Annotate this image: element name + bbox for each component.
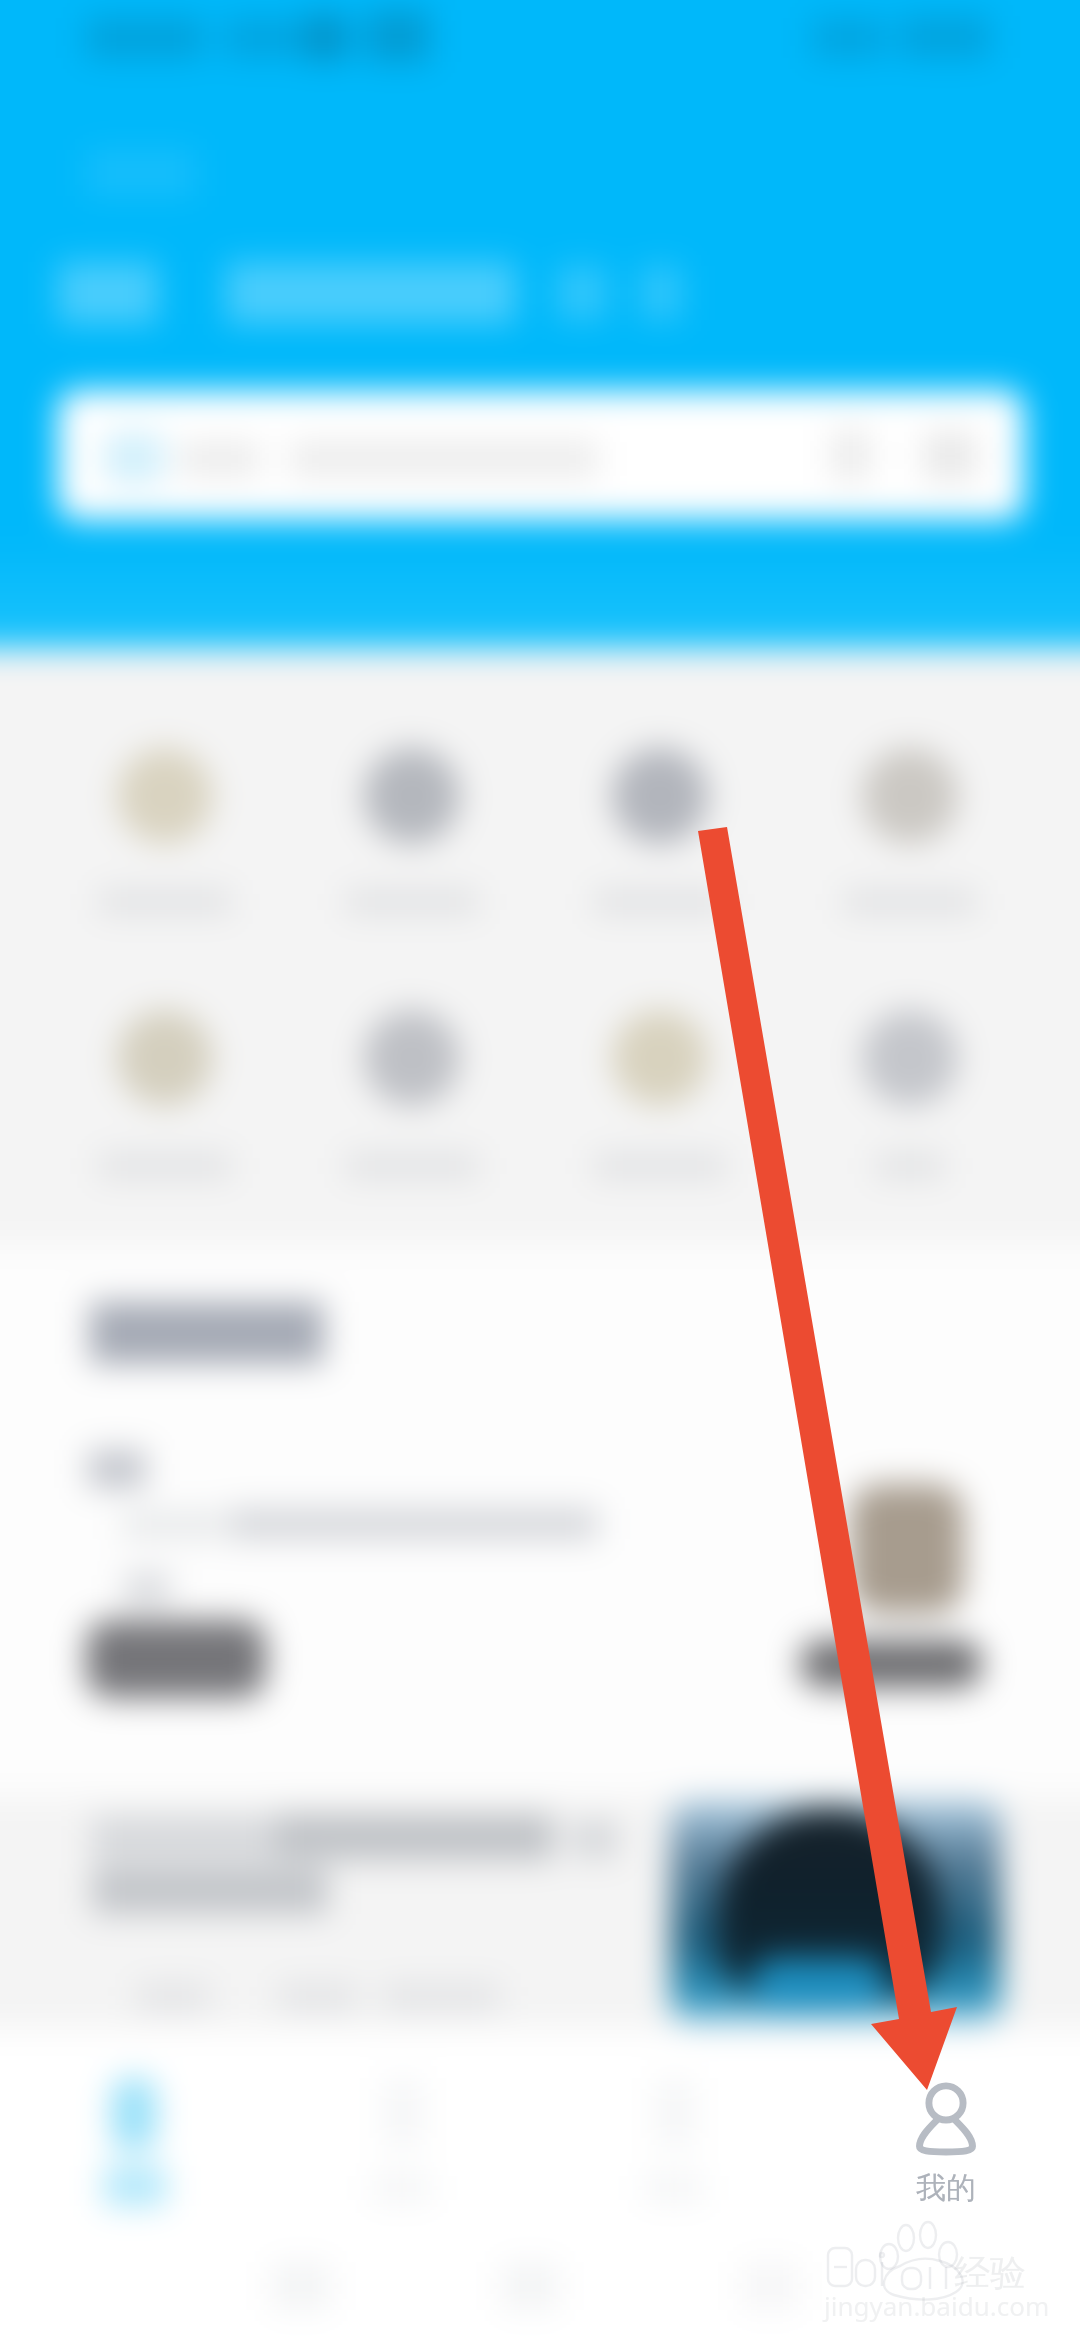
button[interactable]: 我的 (860, 2038, 1032, 2222)
button[interactable]: Home (48, 2038, 220, 2222)
staticText: jingyan.baidu.com (824, 2288, 1050, 2323)
other: Annotation arrow (0, 0, 1080, 2340)
staticText: 我的 (916, 2169, 976, 2207)
staticText: 经验 (954, 2250, 1026, 2295)
button[interactable]: Search (58, 390, 1024, 520)
